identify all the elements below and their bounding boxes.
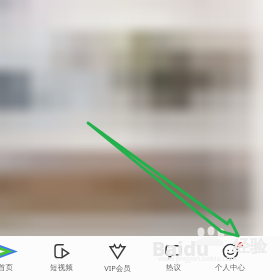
button[interactable]: 短视频 bbox=[33, 236, 89, 280]
staticText: 个人中心 bbox=[215, 263, 245, 272]
button[interactable]: 首页 bbox=[0, 236, 33, 280]
staticText: www.jingyan.baidu.com bbox=[158, 254, 237, 264]
staticText: 经验 bbox=[233, 236, 267, 257]
staticText: 首页 bbox=[0, 263, 13, 272]
staticText: Baidu bbox=[152, 235, 209, 262]
button[interactable]: 热议 bbox=[145, 236, 201, 280]
button[interactable]: 个人中心 bbox=[202, 236, 258, 280]
staticText: 热议 bbox=[166, 263, 181, 272]
staticText: 短视频 bbox=[50, 263, 73, 272]
button[interactable]: VIP会员 bbox=[89, 236, 145, 280]
staticText: VIP会员 bbox=[104, 263, 131, 273]
